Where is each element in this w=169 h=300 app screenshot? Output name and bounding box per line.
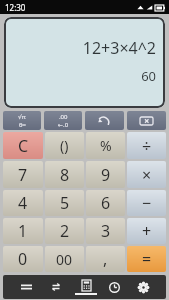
- button[interactable]: 1: [3, 218, 43, 244]
- button[interactable]: −: [127, 190, 166, 216]
- staticText: (): [60, 136, 69, 155]
- staticText: 4: [18, 192, 28, 214]
- button[interactable]: Decimal places: [44, 111, 82, 130]
- button[interactable]: 6: [86, 190, 125, 216]
- button[interactable]: 3: [86, 218, 125, 244]
- staticText: =: [142, 248, 152, 270]
- button[interactable]: Settings: [129, 275, 158, 299]
- button[interactable]: 7: [3, 161, 43, 188]
- staticText: 8: [60, 164, 70, 186]
- staticText: .00: [59, 113, 68, 121]
- staticText: 12+3×4^2: [82, 37, 156, 59]
- staticText: %: [100, 136, 112, 155]
- staticText: +: [142, 220, 152, 242]
- button[interactable]: Constants: [3, 111, 41, 130]
- staticText: C: [18, 135, 29, 157]
- staticText: 1: [18, 220, 28, 242]
- button[interactable]: 2: [45, 218, 84, 244]
- button[interactable]: Calculator: [71, 275, 100, 299]
- staticText: 9: [101, 164, 111, 186]
- staticText: ×: [142, 164, 152, 186]
- staticText: 00: [56, 250, 73, 269]
- button[interactable]: 8: [45, 161, 84, 188]
- staticText: 3: [101, 220, 111, 242]
- staticText: 7: [18, 164, 28, 186]
- staticText: √π: [18, 113, 26, 121]
- staticText: ÷: [142, 135, 152, 157]
- staticText: 60: [141, 67, 156, 85]
- button[interactable]: +: [127, 218, 166, 244]
- button[interactable]: 12+3×4^2: [4, 17, 165, 108]
- button[interactable]: ,: [86, 246, 125, 272]
- button[interactable]: C: [3, 132, 43, 159]
- button[interactable]: (): [45, 132, 84, 159]
- button[interactable]: ÷: [127, 132, 166, 159]
- button[interactable]: 5: [45, 190, 84, 216]
- staticText: −: [142, 192, 152, 214]
- staticText: 2: [60, 220, 70, 242]
- button[interactable]: 4: [3, 190, 43, 216]
- button[interactable]: %: [86, 132, 125, 159]
- button[interactable]: 9: [86, 161, 125, 188]
- staticText: 12:30: [5, 2, 26, 13]
- button[interactable]: Backspace: [127, 111, 166, 130]
- staticText: ,: [103, 248, 108, 270]
- staticText: 0: [18, 248, 28, 270]
- button[interactable]: History: [100, 275, 129, 299]
- button[interactable]: Convert: [41, 275, 71, 299]
- staticText: ←.0: [58, 121, 69, 129]
- button[interactable]: =: [127, 246, 166, 272]
- button[interactable]: 00: [45, 246, 84, 272]
- staticText: 6: [101, 192, 111, 214]
- button[interactable]: Menu: [11, 275, 41, 299]
- button[interactable]: ×: [127, 161, 166, 188]
- button[interactable]: Undo: [85, 111, 124, 130]
- staticText: θ=: [19, 121, 26, 129]
- staticText: 5: [60, 192, 70, 214]
- button[interactable]: 0: [3, 246, 43, 272]
